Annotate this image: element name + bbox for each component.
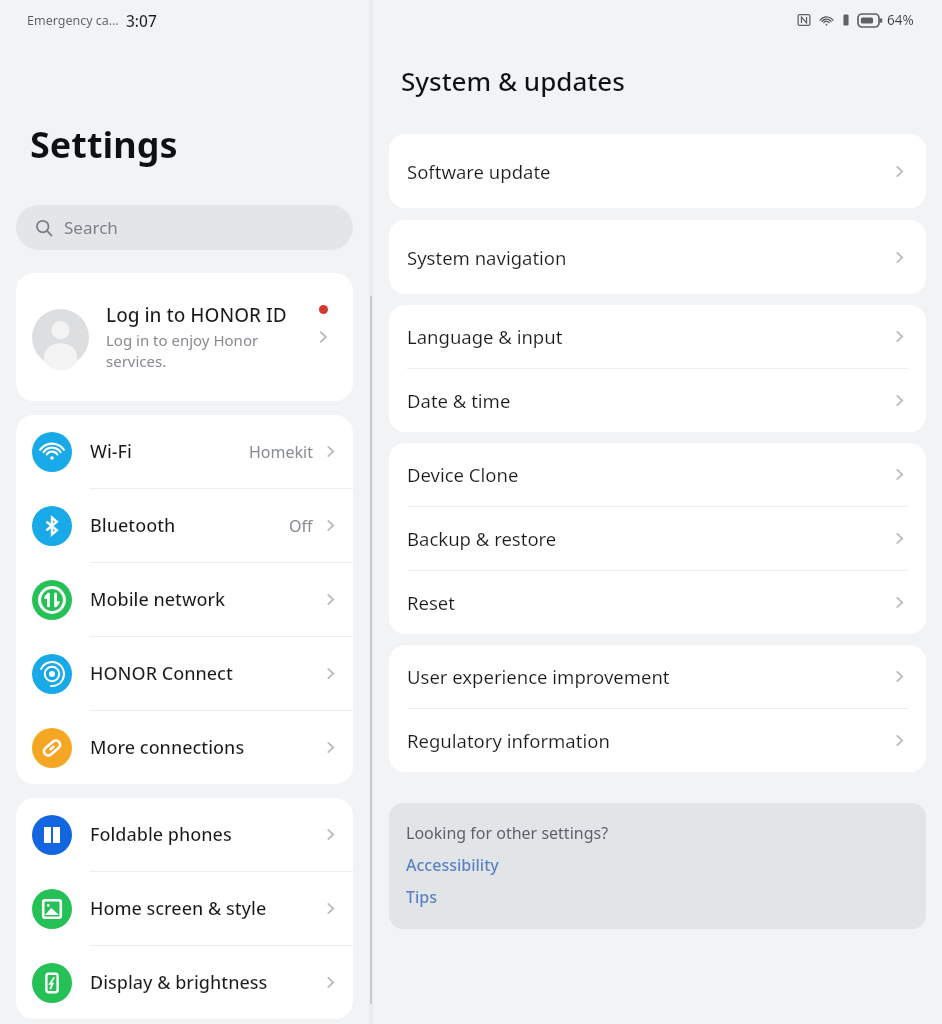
- button[interactable]: Log in to HONOR ID: [16, 273, 353, 401]
- staticText: User experience improvement: [407, 664, 891, 689]
- button[interactable]: Date & time: [389, 369, 926, 432]
- staticText: Log in to HONOR ID: [106, 302, 287, 328]
- button[interactable]: Accessibility: [406, 854, 499, 876]
- button[interactable]: Home screen & style: [16, 872, 353, 945]
- staticText: 3:07: [126, 10, 157, 31]
- staticText: Home screen & style: [90, 896, 322, 921]
- staticText: More connections: [90, 735, 322, 760]
- staticText: Foldable phones: [90, 822, 322, 847]
- staticText: Software update: [407, 159, 891, 184]
- staticText: System & updates: [401, 63, 625, 98]
- staticText: Homekit: [249, 441, 313, 463]
- button[interactable]: Tips: [406, 886, 438, 908]
- button[interactable]: More connections: [16, 711, 353, 784]
- button[interactable]: Mobile network: [16, 563, 353, 636]
- staticText: Looking for other settings?: [406, 822, 609, 844]
- staticText: HONOR Connect: [90, 661, 322, 686]
- button[interactable]: Language & input: [389, 305, 926, 368]
- staticText: Display & brightness: [90, 970, 322, 995]
- button[interactable]: User experience improvement: [389, 645, 926, 708]
- staticText: Off: [289, 515, 313, 537]
- button[interactable]: Software update: [389, 134, 926, 208]
- staticText: Emergency ca…: [27, 12, 119, 29]
- staticText: Language & input: [407, 324, 891, 349]
- staticText: Bluetooth: [90, 513, 289, 538]
- staticText: Settings: [30, 120, 178, 169]
- staticText: Device Clone: [407, 462, 891, 487]
- button[interactable]: Device Clone: [389, 443, 926, 506]
- button[interactable]: Display & brightness: [16, 946, 353, 1019]
- button[interactable]: System navigation: [389, 220, 926, 294]
- button[interactable]: HONOR Connect: [16, 637, 353, 710]
- staticText: Date & time: [407, 388, 891, 413]
- staticText: Log in to enjoy Honor services.: [106, 330, 305, 372]
- button[interactable]: Backup & restore: [389, 507, 926, 570]
- button[interactable]: Foldable phones: [16, 798, 353, 871]
- staticText: Regulatory information: [407, 728, 891, 753]
- button[interactable]: Search: [16, 205, 353, 250]
- button[interactable]: Reset: [389, 571, 926, 634]
- staticText: Wi-Fi: [90, 439, 249, 464]
- staticText: 64%: [887, 11, 914, 29]
- button[interactable]: Bluetooth: [16, 489, 353, 562]
- staticText: Backup & restore: [407, 526, 891, 551]
- staticText: Mobile network: [90, 587, 322, 612]
- button[interactable]: Regulatory information: [389, 709, 926, 772]
- staticText: System navigation: [407, 245, 891, 270]
- staticText: Search: [64, 216, 118, 239]
- staticText: Reset: [407, 590, 891, 615]
- button[interactable]: Wi-Fi: [16, 415, 353, 488]
